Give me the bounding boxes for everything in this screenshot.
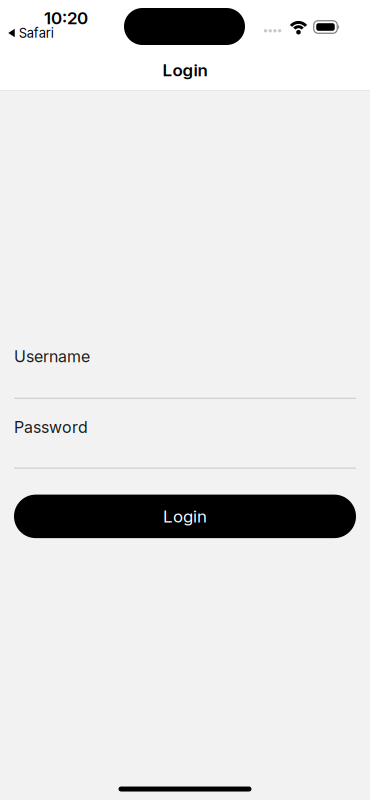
button[interactable]: Login (14, 495, 356, 538)
staticText: Password (14, 418, 88, 437)
staticText: Username (14, 347, 90, 366)
staticText: Login (163, 506, 207, 526)
staticText: Safari (19, 25, 54, 41)
staticText: Login (162, 60, 207, 80)
button[interactable]: Password (14, 418, 356, 469)
staticText: 10:20 (44, 8, 88, 28)
button[interactable]: Username (14, 347, 356, 399)
button[interactable]: Back to Safari (8, 25, 54, 41)
